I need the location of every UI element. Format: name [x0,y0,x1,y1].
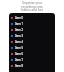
staticText: Item 0 [15,16,23,20]
staticText: Item 2 [15,28,23,32]
button[interactable]: Item 1 [9,21,55,27]
button[interactable]: Item 3 [9,33,55,39]
staticText: Item 4 [15,40,23,44]
button[interactable]: Item 8 [9,63,55,69]
button[interactable]: Item 4 [9,39,55,45]
button[interactable]: Item 2 [9,27,55,33]
staticText: Item 7 [15,58,23,62]
button[interactable]: Item 6 [9,51,55,57]
staticText: Item 1 [15,22,23,26]
button[interactable]: Item 0 [9,15,55,21]
staticText: Item 8 [15,64,23,68]
staticText: Organize your recordings into folders an… [6,1,58,12]
button[interactable]: Item 7 [9,57,55,63]
staticText: Item 6 [15,52,23,56]
staticText: Item 3 [15,34,23,38]
staticText: Item 5 [15,46,23,50]
button[interactable]: Item 5 [9,45,55,51]
